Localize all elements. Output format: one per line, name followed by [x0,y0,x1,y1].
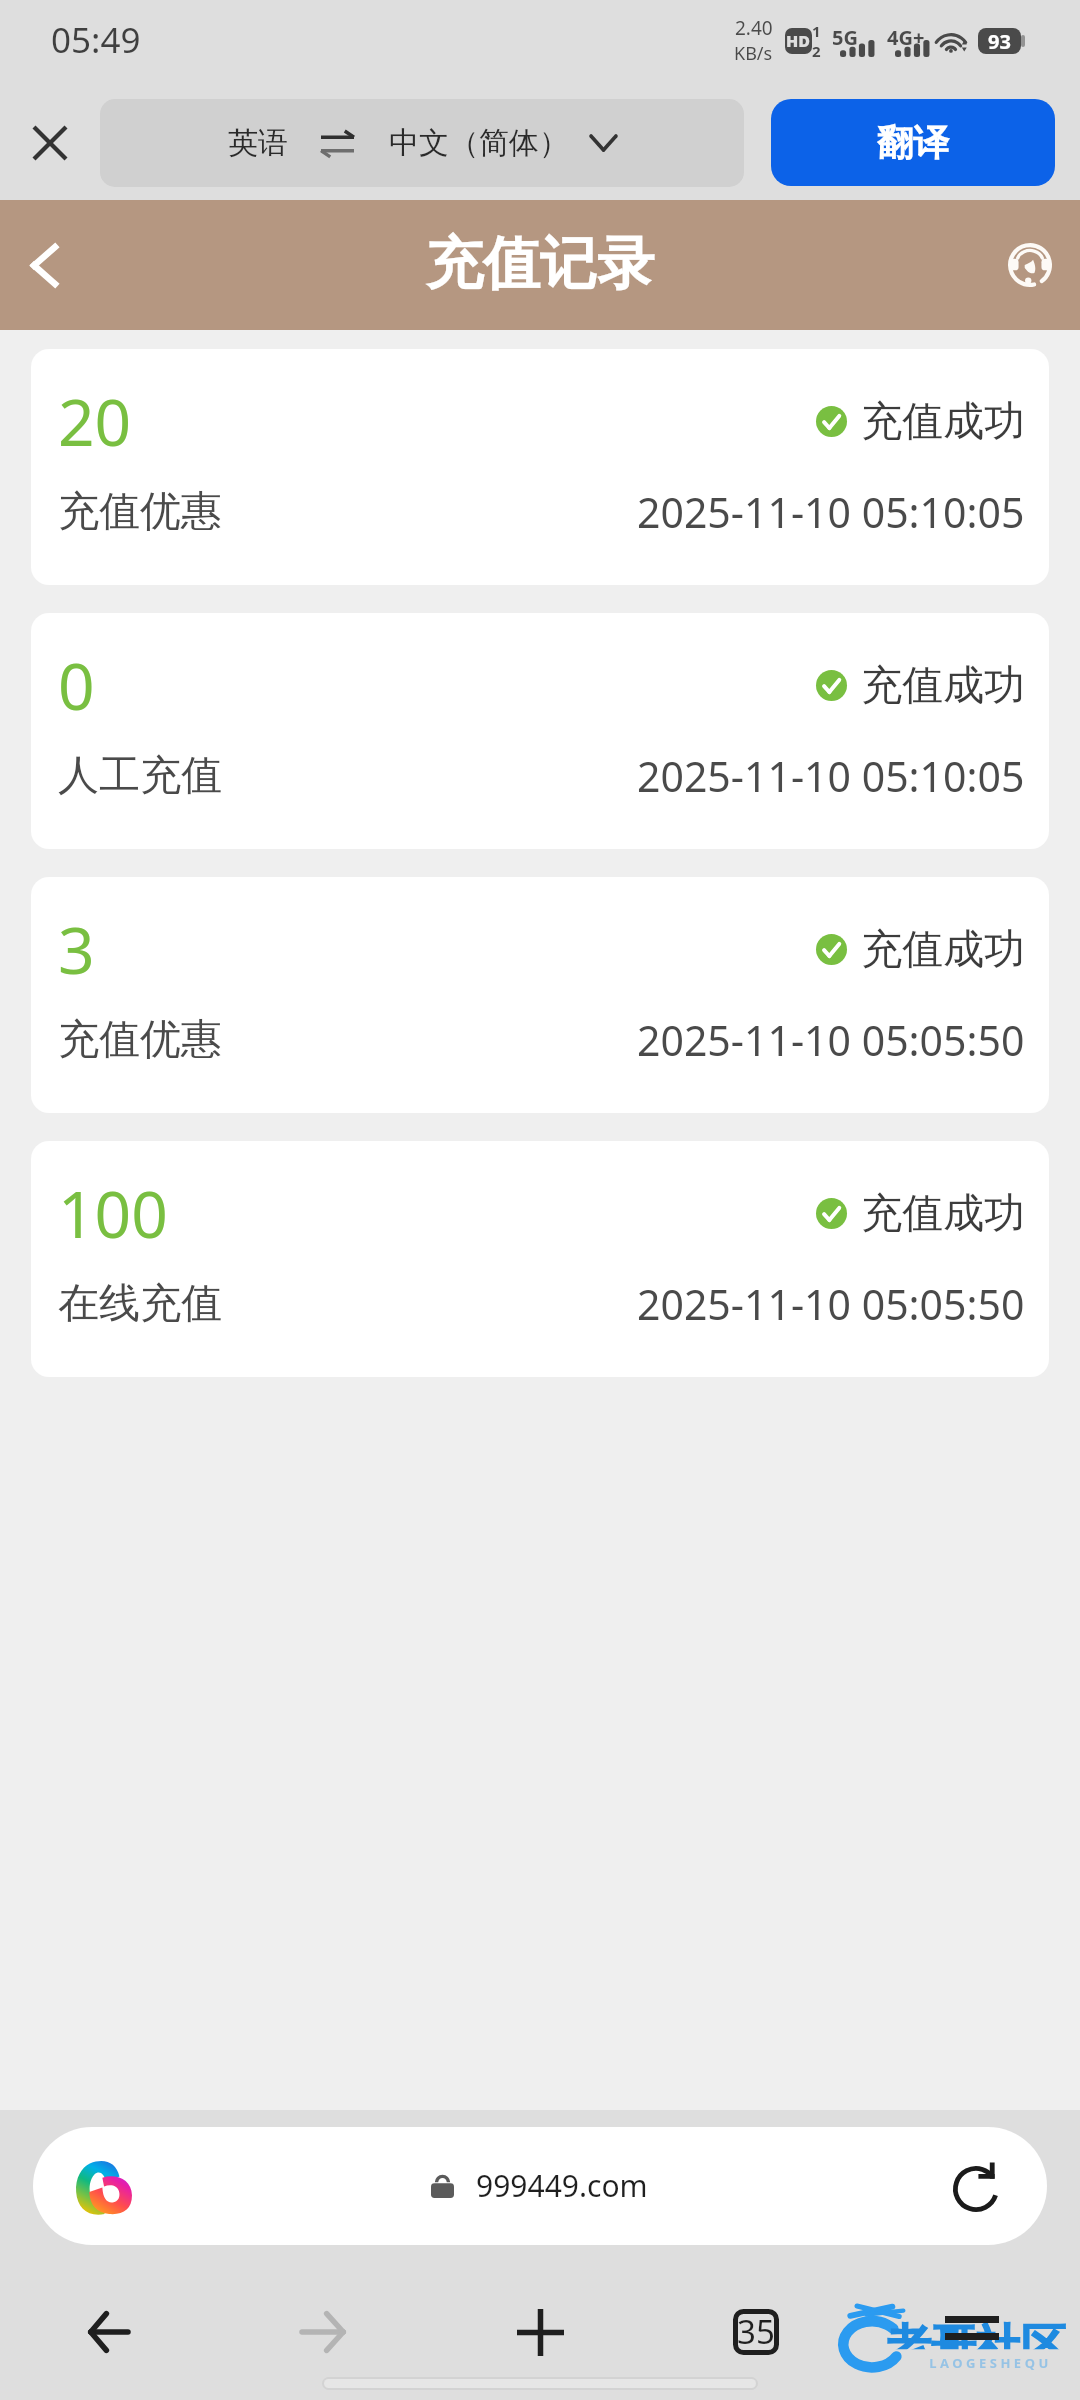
staticText: 20 [58,378,132,465]
staticText: 35 [737,2309,775,2354]
staticText: 0 [58,642,95,729]
button[interactable]: 翻译 [771,99,1055,186]
staticText: 93 [988,28,1011,54]
button[interactable]: 100 [31,1141,1049,1377]
button[interactable]: 999449.com [33,2127,1047,2245]
staticText: 充值记录 [426,228,654,300]
button[interactable]: New tab [432,2289,648,2375]
staticText: 100 [58,1170,168,1257]
button[interactable]: Forward [216,2289,432,2375]
staticText: 4G+ [887,24,925,51]
staticText: 3 [58,906,95,993]
button[interactable]: Customer service [992,227,1068,303]
button[interactable]: Back [0,2289,216,2375]
staticText: 2025-11-10 05:05:50 [637,1012,1025,1068]
staticText: 05:49 [51,16,141,64]
staticText: 2025-11-10 05:10:05 [637,484,1025,540]
button[interactable]: 英语 [100,99,744,187]
staticText: 翻译 [877,120,949,165]
staticText: LAOGESHEQU [929,2354,1052,2372]
button[interactable]: 0 [31,613,1049,849]
staticText: 充值成功 [861,1188,1025,1240]
staticText: 充值成功 [861,924,1025,976]
staticText: 人工充值 [58,750,222,802]
button[interactable]: Back [6,227,82,303]
staticText: 2025-11-10 05:05:50 [637,1276,1025,1332]
button[interactable]: Tabs [648,2289,864,2375]
staticText: KB/s [734,41,773,66]
button[interactable]: Close [14,107,86,179]
staticText: 2 [812,41,821,61]
button[interactable]: Menu [864,2289,1080,2375]
staticText: 充值成功 [861,660,1025,712]
staticText: 中文（简体） [389,124,569,162]
staticText: HD [786,30,811,52]
staticText: 2025-11-10 05:10:05 [637,748,1025,804]
staticText: 充值成功 [861,396,1025,448]
staticText: 充值优惠 [58,486,222,538]
staticText: 英语 [228,124,288,162]
staticText: 充值优惠 [58,1014,222,1066]
staticText: 999449.com [476,2165,648,2206]
staticText: 在线充值 [58,1278,222,1330]
staticText: 1 [812,21,821,41]
staticText: 老哥社区 [886,2319,1066,2349]
button[interactable]: 20 [31,349,1049,585]
staticText: 5G [832,24,858,51]
button[interactable]: 3 [31,877,1049,1113]
staticText: 2.40 [735,15,773,41]
button[interactable]: Reload [947,2160,1005,2218]
